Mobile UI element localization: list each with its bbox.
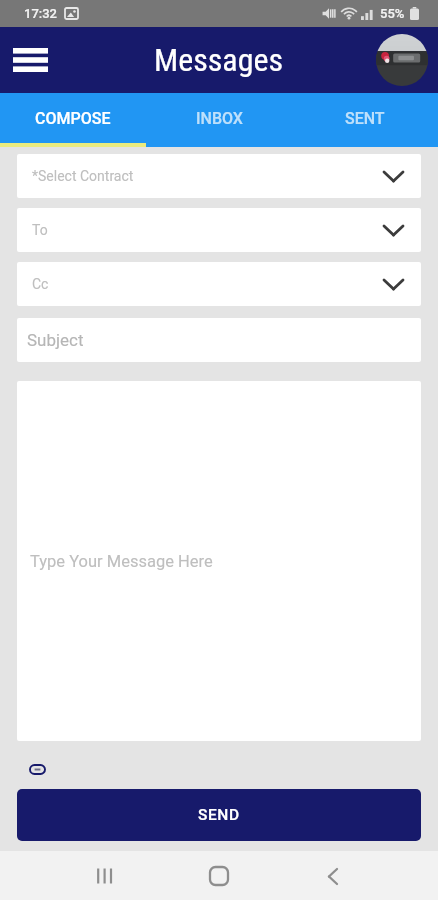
button[interactable]: INBOX: [146, 93, 292, 143]
button[interactable]: Cc: [17, 262, 421, 306]
button[interactable]: Attach file: [27, 761, 47, 777]
staticText: INBOX: [196, 109, 243, 128]
staticText: COMPOSE: [35, 109, 111, 128]
staticText: To: [32, 222, 48, 238]
button[interactable]: COMPOSE: [0, 93, 146, 143]
staticText: 55%: [380, 6, 405, 21]
button[interactable]: Home: [195, 852, 243, 900]
button[interactable]: SENT: [292, 93, 438, 143]
staticText: *Select Contract: [32, 168, 134, 184]
button[interactable]: Profile: [376, 34, 428, 86]
button[interactable]: Back: [309, 852, 357, 900]
button[interactable]: Open navigation menu: [5, 35, 55, 85]
staticText: Messages: [154, 41, 284, 79]
button[interactable]: *Select Contract: [17, 154, 421, 198]
staticText: Subject: [27, 330, 84, 350]
staticText: Cc: [32, 276, 49, 292]
button[interactable]: Subject: [17, 318, 421, 362]
staticText: 17:32: [24, 6, 58, 21]
staticText: Type Your Message Here: [30, 552, 213, 571]
button[interactable]: Recent apps: [81, 852, 129, 900]
button[interactable]: SEND: [17, 789, 421, 841]
button[interactable]: Type Your Message Here: [17, 381, 421, 741]
staticText: SENT: [345, 109, 385, 128]
staticText: SEND: [198, 806, 240, 824]
button[interactable]: To: [17, 208, 421, 252]
